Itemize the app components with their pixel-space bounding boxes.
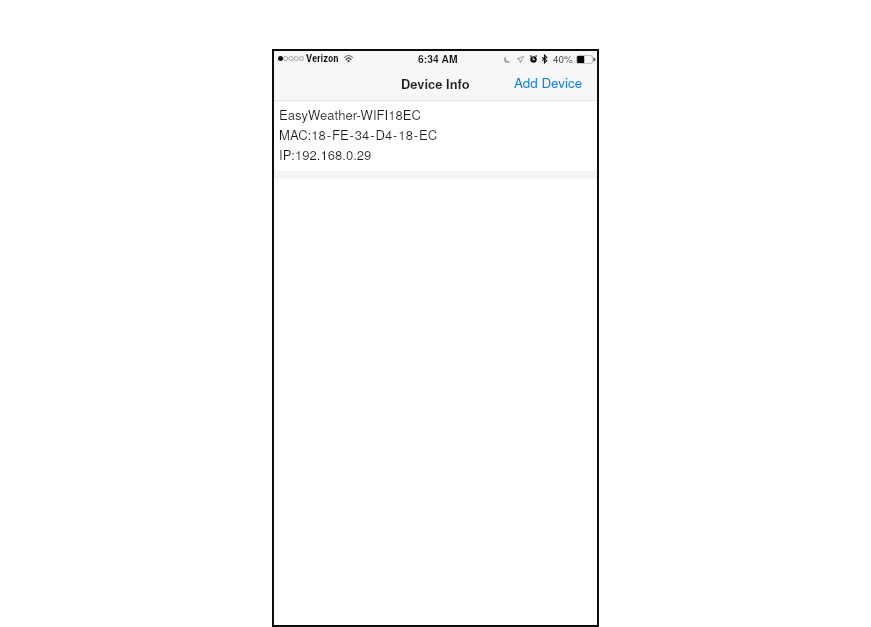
other: Battery 40 percent	[576, 55, 596, 64]
other: Location services	[517, 56, 524, 63]
other: Wi-Fi	[344, 55, 353, 62]
staticText: Device Info	[401, 74, 470, 93]
button[interactable]: EasyWeather-WIFI18EC	[274, 101, 597, 171]
staticText: Verizon	[306, 52, 339, 65]
staticText: MAC:18-FE-34-D4-18-EC	[279, 125, 438, 144]
button[interactable]: Add Device	[502, 67, 597, 98]
other: Alarm set	[530, 55, 537, 63]
other: Cellular signal	[278, 56, 304, 61]
other: Bluetooth	[542, 55, 547, 63]
staticText: Add Device	[514, 73, 583, 92]
staticText: EasyWeather-WIFI18EC	[279, 105, 421, 124]
other: Do not disturb	[504, 56, 511, 63]
staticText: IP:192.168.0.29	[279, 145, 372, 164]
staticText: 40%	[553, 52, 573, 66]
staticText: 6:34 AM	[418, 51, 458, 66]
